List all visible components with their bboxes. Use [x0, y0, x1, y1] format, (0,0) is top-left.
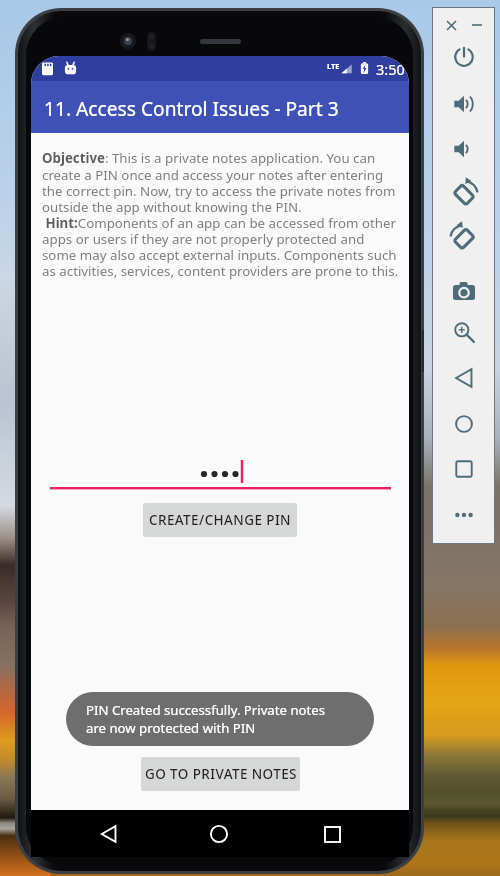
button[interactable]: Home	[197, 812, 241, 856]
button[interactable]: Close	[440, 14, 462, 36]
button[interactable]: Back	[87, 812, 131, 856]
button[interactable]: More options	[432, 493, 495, 537]
button[interactable]: CREATE/CHANGE PIN	[143, 503, 297, 537]
button[interactable]: Recents	[310, 812, 354, 856]
button[interactable]: Rotate left	[432, 171, 495, 215]
staticText: LTE	[327, 61, 340, 71]
button[interactable]: Power	[432, 35, 495, 79]
button[interactable]: Back	[432, 356, 495, 400]
staticText: GO TO PRIVATE NOTES	[145, 765, 297, 783]
button[interactable]: GO TO PRIVATE NOTES	[141, 757, 300, 791]
staticText: PIN Created successfully. Private notes …	[86, 701, 332, 737]
staticText: 3:50	[376, 59, 405, 79]
button[interactable]: Rotate right	[432, 215, 495, 259]
button[interactable]: Zoom	[432, 310, 495, 354]
staticText: 11. Access Control Issues - Part 3	[44, 95, 339, 121]
staticText: CREATE/CHANGE PIN	[149, 511, 291, 529]
button[interactable]: Screenshot	[432, 270, 495, 314]
button[interactable]: 11. Access Control Issues - Part 3	[31, 81, 409, 133]
button[interactable]: Volume up	[432, 82, 495, 126]
button[interactable]: Volume down	[432, 127, 495, 171]
button[interactable]: Overview	[432, 447, 495, 491]
button[interactable]: Minimize	[466, 14, 488, 36]
staticText: Objective: This is a private notes appli…	[42, 149, 400, 280]
button[interactable]: Home	[432, 402, 495, 446]
